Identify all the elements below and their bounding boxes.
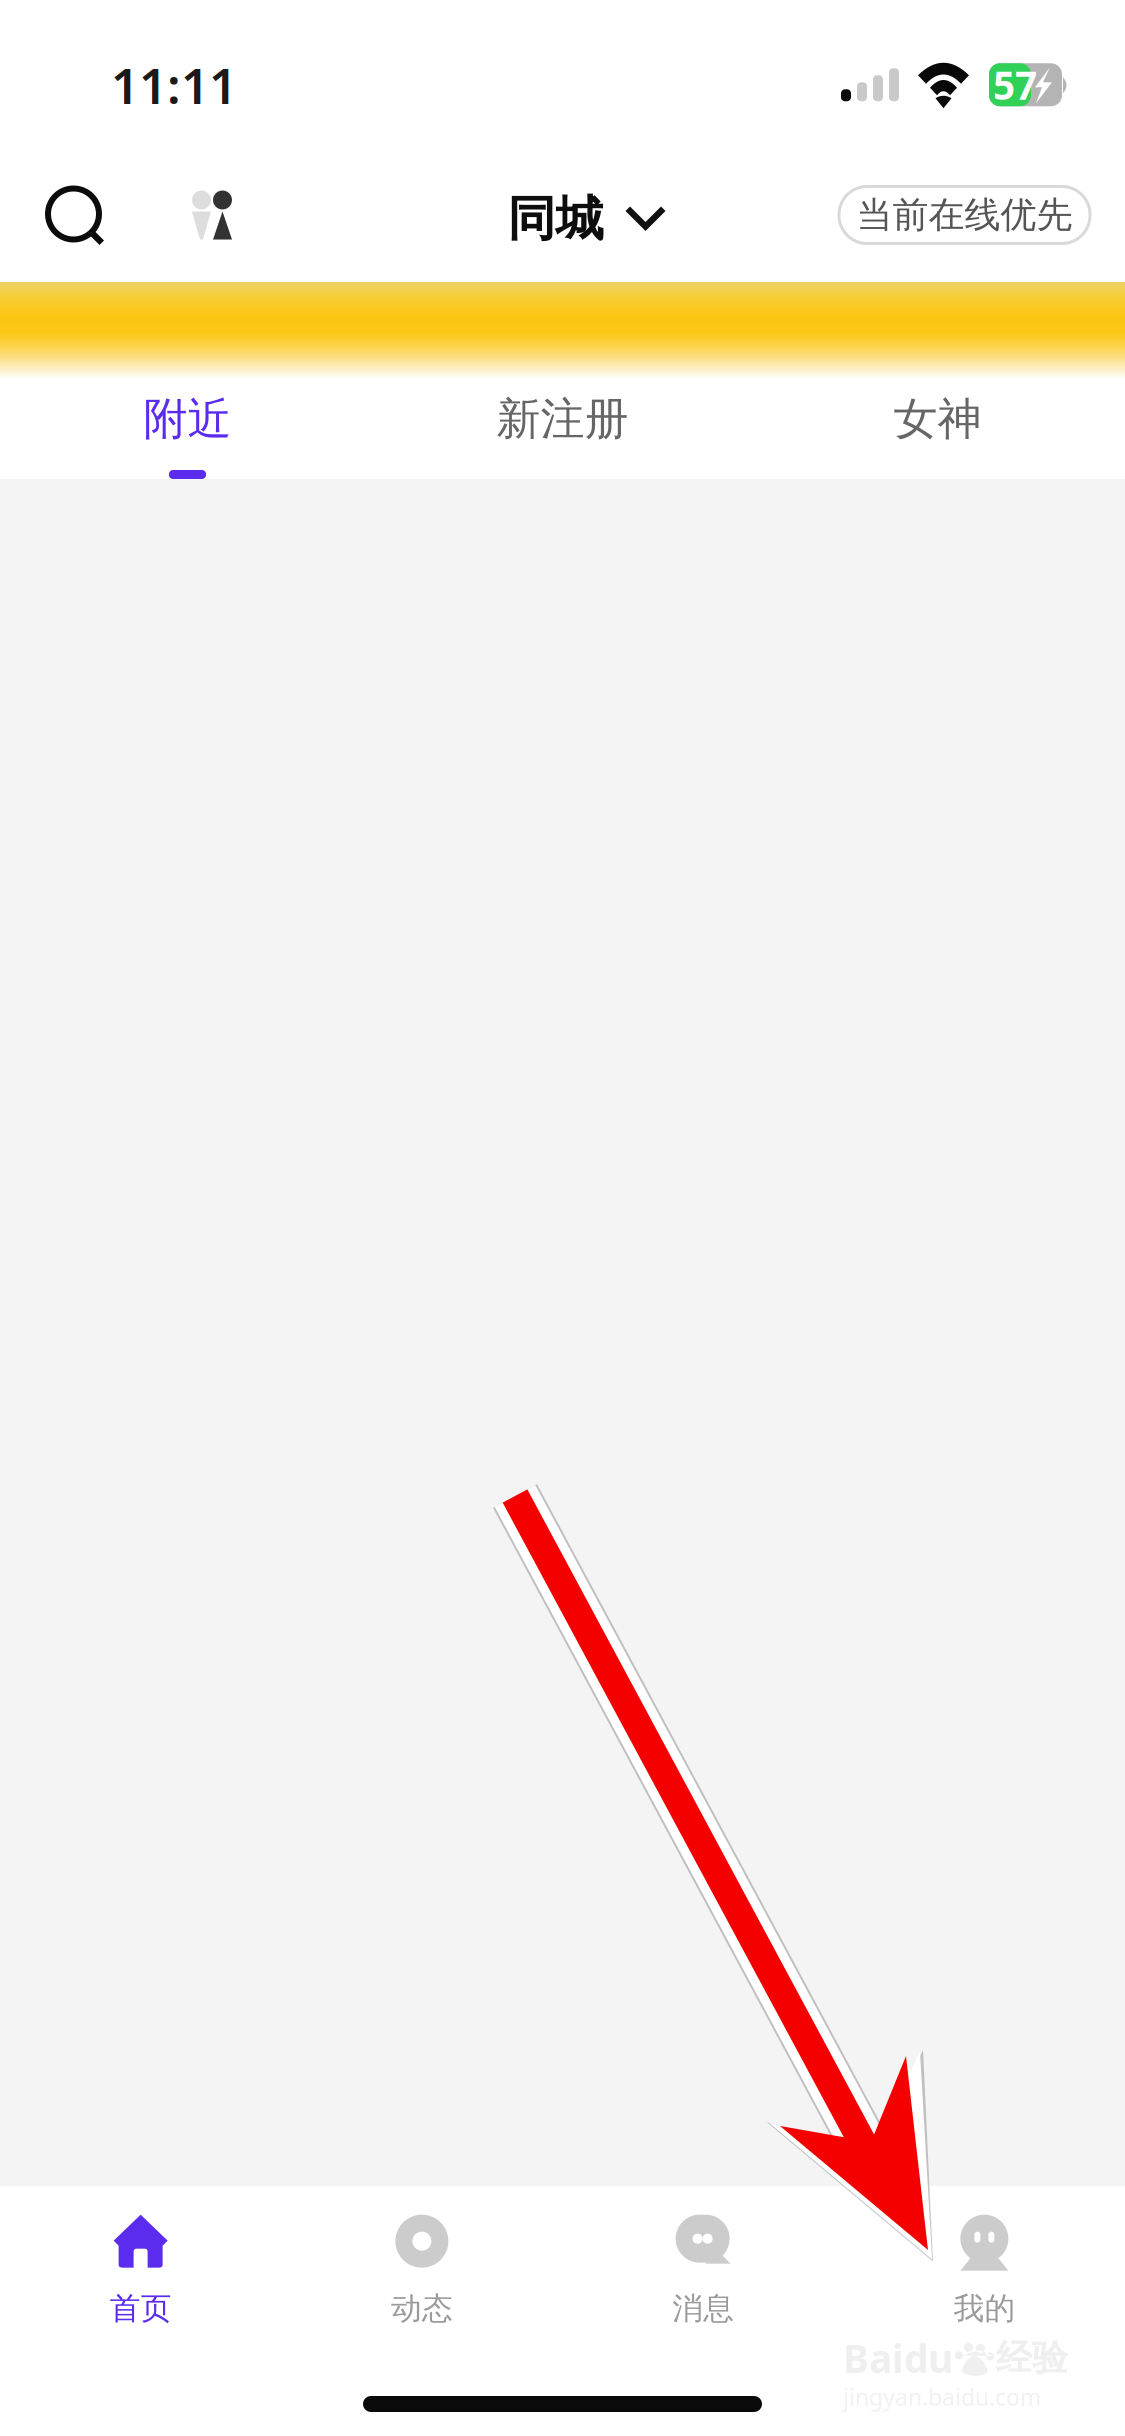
staticText: 当前在线优先 bbox=[856, 193, 1072, 237]
button[interactable]: Gender filter bbox=[159, 155, 265, 275]
staticText: 经验 bbox=[996, 2336, 1068, 2380]
button[interactable]: 同城 bbox=[439, 170, 685, 259]
button[interactable]: 当前在线优先 bbox=[839, 186, 1090, 243]
button[interactable]: 女神 bbox=[750, 379, 1125, 479]
staticText: 我的 bbox=[953, 2290, 1015, 2327]
button[interactable]: 首页 bbox=[0, 2186, 281, 2332]
staticText: 女神 bbox=[893, 392, 981, 446]
staticText: jingyan.baidu.com bbox=[843, 2382, 1041, 2412]
button[interactable]: 新注册 bbox=[375, 379, 750, 479]
button[interactable]: Search bbox=[24, 155, 128, 275]
staticText: 新注册 bbox=[496, 392, 628, 446]
staticText: 11:11 bbox=[111, 52, 237, 117]
staticText: 动态 bbox=[391, 2290, 453, 2327]
button[interactable]: 我的 bbox=[844, 2186, 1125, 2332]
staticText: 同城 bbox=[507, 189, 603, 248]
button[interactable]: 附近 bbox=[0, 379, 375, 479]
staticText: 首页 bbox=[110, 2290, 172, 2327]
button[interactable]: 动态 bbox=[281, 2186, 562, 2332]
staticText: Baidu bbox=[843, 2332, 953, 2383]
staticText: 消息 bbox=[672, 2290, 734, 2327]
button[interactable]: 消息 bbox=[562, 2186, 844, 2332]
staticText: 57 bbox=[993, 59, 1037, 110]
staticText: 附近 bbox=[143, 392, 231, 446]
